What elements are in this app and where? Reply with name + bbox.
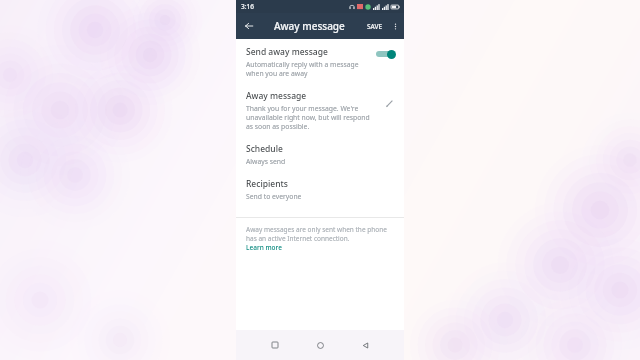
staticText: Send to everyone bbox=[246, 192, 302, 201]
button[interactable]: Back bbox=[239, 16, 259, 36]
button[interactable]: Home bbox=[311, 336, 329, 354]
staticText: Schedule bbox=[246, 143, 283, 155]
button[interactable]: SAVE bbox=[364, 19, 386, 34]
staticText: 3:16 bbox=[241, 2, 254, 11]
staticText: SAVE bbox=[367, 22, 383, 31]
staticText: Recipients bbox=[246, 178, 288, 190]
button[interactable]: Schedule bbox=[236, 137, 404, 172]
staticText: Thank you for your message. We're unavai… bbox=[246, 104, 378, 131]
staticText: Always send bbox=[246, 157, 286, 166]
staticText: Away message bbox=[246, 90, 307, 102]
button[interactable]: Recent apps bbox=[266, 336, 284, 354]
button[interactable]: Back bbox=[356, 336, 374, 354]
staticText: Away messages are only sent when the pho… bbox=[246, 225, 394, 243]
staticText: Away message bbox=[274, 19, 345, 33]
button[interactable]: Send away message bbox=[236, 39, 404, 85]
button[interactable]: More options bbox=[386, 17, 404, 35]
staticText: Automatically reply with a message when … bbox=[246, 60, 368, 78]
button[interactable]: Send away message toggle bbox=[374, 47, 396, 61]
staticText: Send away message bbox=[246, 46, 328, 58]
staticText: Learn more bbox=[246, 243, 282, 252]
button[interactable]: Away message bbox=[236, 85, 404, 137]
button[interactable]: Learn more bbox=[246, 243, 282, 252]
button[interactable]: Recipients bbox=[236, 172, 404, 207]
button[interactable]: Edit bbox=[382, 96, 396, 110]
